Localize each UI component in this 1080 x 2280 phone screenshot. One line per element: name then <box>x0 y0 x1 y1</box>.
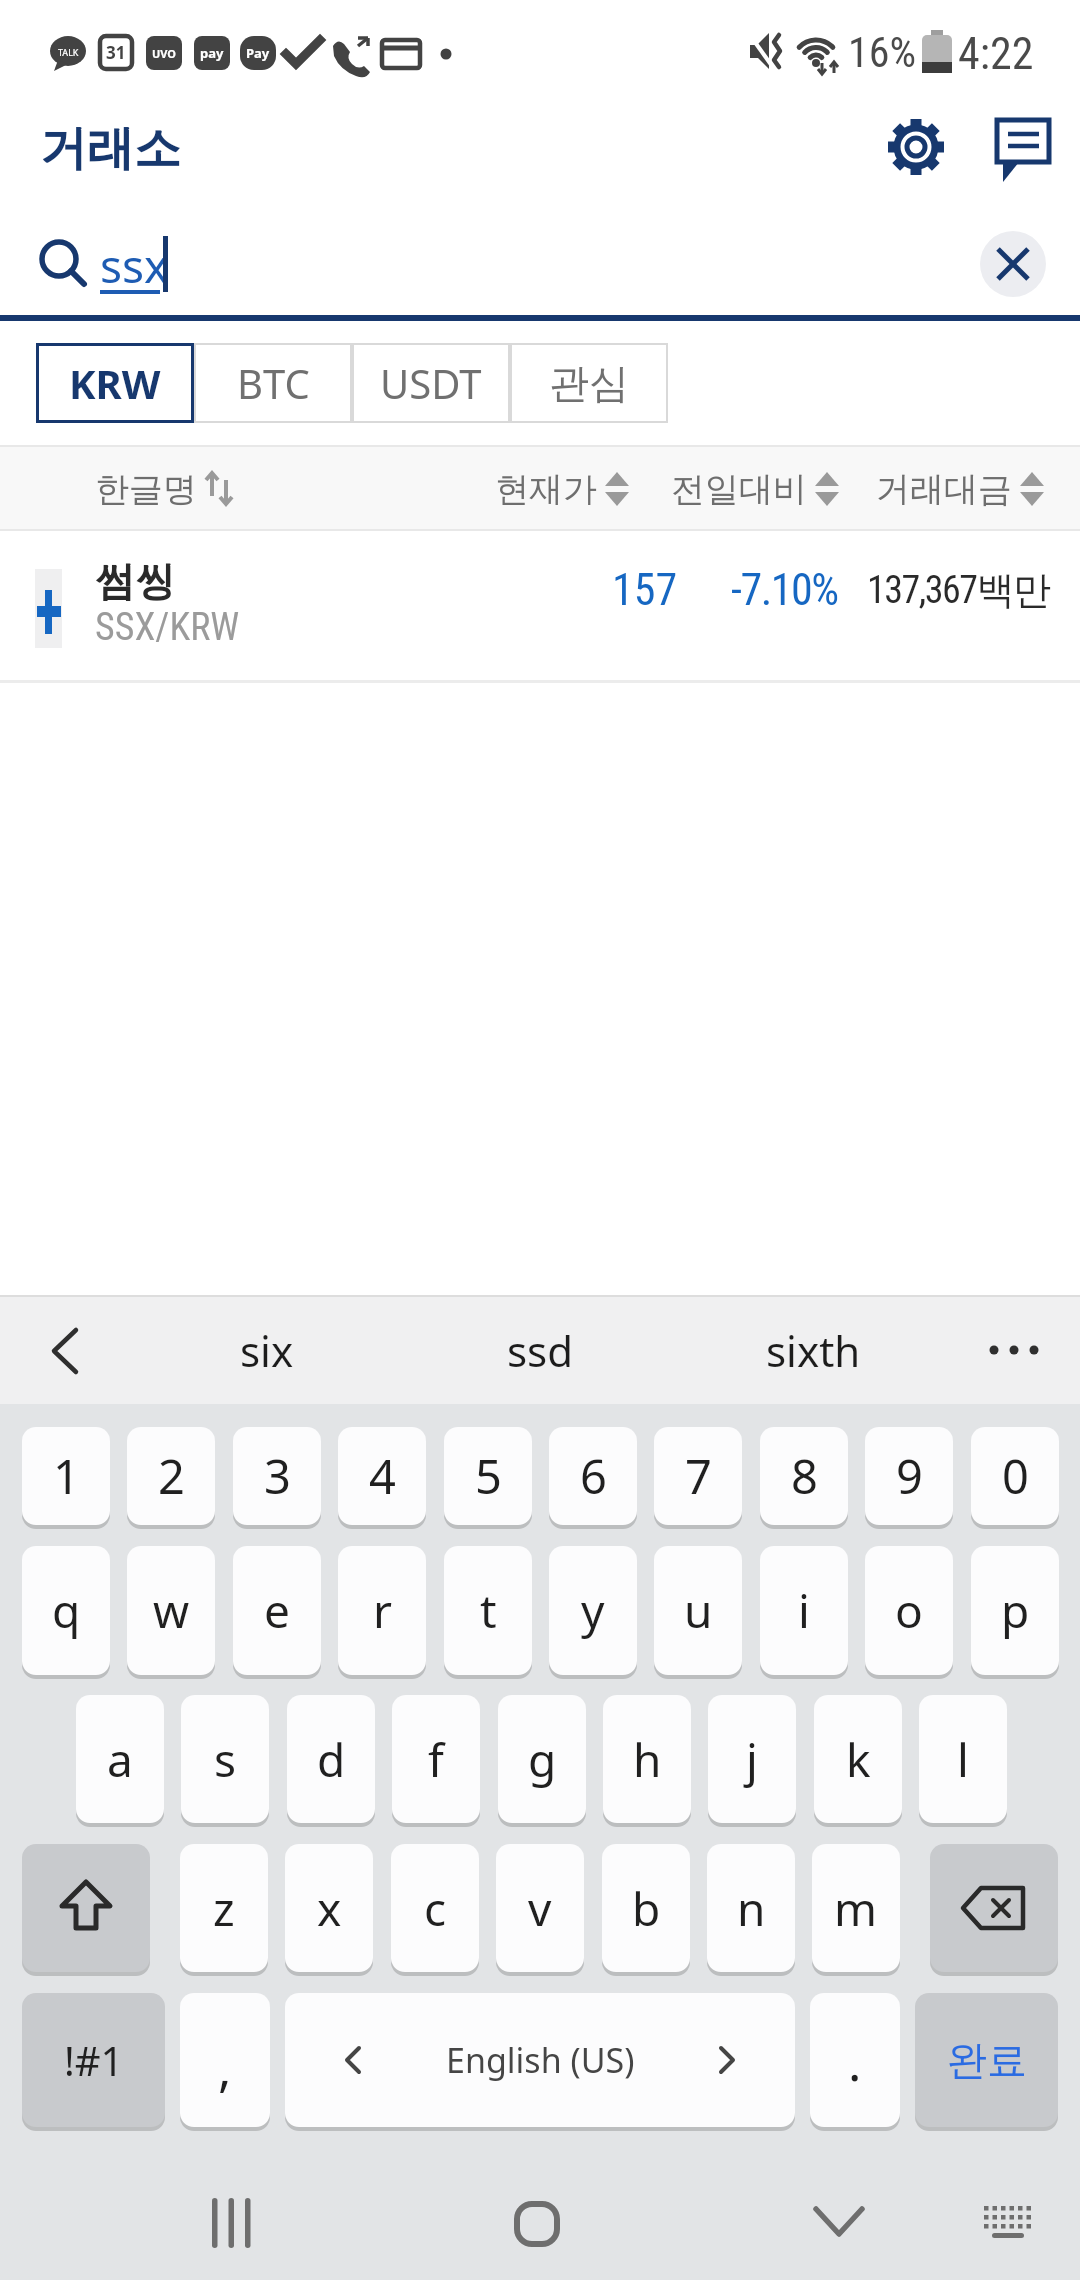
button[interactable]: d <box>287 1695 375 1823</box>
staticText: 전일대비 <box>671 468 807 511</box>
staticText: 8 <box>791 1444 818 1508</box>
staticText: l <box>957 1728 969 1791</box>
button[interactable]: KRW <box>36 343 194 423</box>
staticText: English (US) <box>446 2037 635 2083</box>
button[interactable] <box>930 1844 1058 1972</box>
button[interactable]: y <box>549 1546 637 1675</box>
button[interactable]: !#1 <box>22 1993 165 2127</box>
button[interactable]: z <box>180 1844 268 1972</box>
staticText: 7 <box>685 1444 712 1508</box>
button[interactable] <box>46 1328 86 1374</box>
staticText: o <box>895 1579 923 1642</box>
button[interactable] <box>888 119 944 175</box>
button[interactable]: English (US) <box>285 1993 795 2127</box>
staticText: UVO <box>152 46 177 61</box>
button[interactable]: 4 <box>338 1427 426 1525</box>
button[interactable]: u <box>654 1546 742 1675</box>
button[interactable]: m <box>812 1844 900 1972</box>
button[interactable]: BTC <box>194 343 352 423</box>
button[interactable]: n <box>707 1844 795 1972</box>
button[interactable]: t <box>444 1546 532 1675</box>
button[interactable]: 완료 <box>915 1993 1058 2127</box>
button[interactable] <box>35 569 62 648</box>
staticText: q <box>52 1579 81 1642</box>
staticText: t <box>480 1579 497 1642</box>
staticText: 4 <box>369 1444 396 1508</box>
button[interactable] <box>980 231 1046 297</box>
button[interactable]: i <box>760 1546 848 1675</box>
staticText: 거래대금 <box>876 468 1012 511</box>
staticText: pay <box>200 44 224 62</box>
staticText: 현재가 <box>495 468 597 511</box>
staticText: w <box>153 1579 190 1642</box>
staticText: 2 <box>158 1444 185 1508</box>
staticText: six <box>240 1322 294 1379</box>
button[interactable] <box>814 2206 864 2240</box>
button[interactable] <box>982 2206 1034 2250</box>
button[interactable] <box>514 2201 560 2247</box>
button[interactable]: k <box>814 1695 902 1823</box>
staticText: k <box>846 1728 871 1791</box>
button[interactable]: 9 <box>865 1427 953 1525</box>
staticText: u <box>684 1579 713 1642</box>
button[interactable] <box>988 1342 1040 1358</box>
button[interactable]: . <box>810 1993 900 2127</box>
button[interactable]: 2 <box>127 1427 215 1525</box>
button[interactable]: 6 <box>549 1427 637 1525</box>
staticText: BTC <box>237 356 310 410</box>
button[interactable]: h <box>603 1695 691 1823</box>
button[interactable]: s <box>181 1695 269 1823</box>
button[interactable]: e <box>233 1546 321 1675</box>
staticText: 157 <box>612 564 678 616</box>
staticText: 관심 <box>549 358 629 408</box>
button[interactable]: v <box>496 1844 584 1972</box>
staticText: 완료 <box>947 2035 1027 2085</box>
button[interactable]: six <box>167 1297 367 1404</box>
staticText: 1 <box>53 1444 80 1508</box>
button[interactable]: b <box>602 1844 690 1972</box>
button[interactable]: 관심 <box>510 343 668 423</box>
button[interactable]: ssd <box>440 1297 640 1404</box>
staticText: 4:22 <box>958 28 1034 76</box>
staticText: 3 <box>264 1444 291 1508</box>
button[interactable] <box>22 1844 150 1972</box>
staticText: 137,367백만 <box>867 566 1050 614</box>
button[interactable]: j <box>708 1695 796 1823</box>
button[interactable]: a <box>76 1695 164 1823</box>
staticText: Pay <box>246 44 270 62</box>
button[interactable] <box>0 535 1080 682</box>
button[interactable]: o <box>865 1546 953 1675</box>
button[interactable]: 1 <box>22 1427 110 1525</box>
button[interactable] <box>995 118 1053 188</box>
button[interactable]: w <box>127 1546 215 1675</box>
button[interactable]: 8 <box>760 1427 848 1525</box>
staticText: x <box>317 1877 342 1940</box>
button[interactable]: x <box>285 1844 373 1972</box>
staticText: . <box>848 2028 862 2096</box>
button[interactable] <box>20 225 960 303</box>
button[interactable]: c <box>391 1844 479 1972</box>
button[interactable]: USDT <box>352 343 510 423</box>
button[interactable]: f <box>392 1695 480 1823</box>
staticText: e <box>264 1579 290 1642</box>
button[interactable]: , <box>180 1993 270 2127</box>
button[interactable]: 7 <box>654 1427 742 1525</box>
button[interactable]: r <box>338 1546 426 1675</box>
staticText: 한글명 <box>95 468 197 511</box>
button[interactable]: g <box>498 1695 586 1823</box>
button[interactable]: q <box>22 1546 110 1675</box>
staticText: s <box>214 1728 237 1791</box>
button[interactable]: 3 <box>233 1427 321 1525</box>
button[interactable]: l <box>919 1695 1007 1823</box>
staticText: sixth <box>766 1322 861 1379</box>
button[interactable]: sixth <box>713 1297 913 1404</box>
staticText: ssd <box>507 1322 574 1379</box>
button[interactable]: 5 <box>444 1427 532 1525</box>
staticText: 6 <box>580 1444 607 1508</box>
button[interactable] <box>212 2198 258 2250</box>
button[interactable]: p <box>971 1546 1059 1675</box>
staticText: 썸씽 <box>95 556 175 606</box>
staticText: 거래소 <box>40 119 181 178</box>
button[interactable]: 0 <box>971 1427 1059 1525</box>
staticText: r <box>373 1579 392 1642</box>
